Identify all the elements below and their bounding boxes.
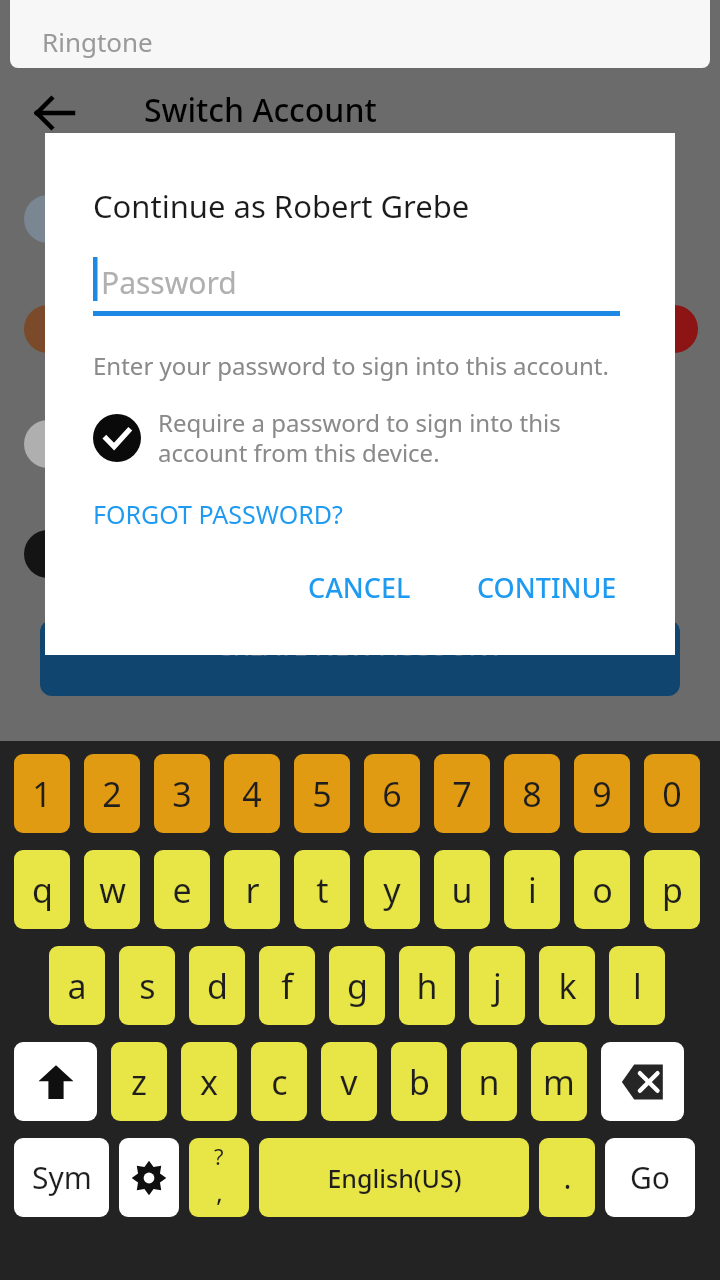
staticText: CREATE NEW ACCOUNT xyxy=(216,628,504,663)
staticText: 5 xyxy=(312,771,332,817)
button[interactable]: n xyxy=(461,1042,517,1121)
button[interactable]: k xyxy=(539,946,595,1025)
button[interactable]: l xyxy=(609,946,665,1025)
button[interactable]: 8 xyxy=(504,754,560,833)
staticText: u xyxy=(451,867,473,913)
button[interactable]: i xyxy=(504,850,560,929)
staticText: r xyxy=(245,867,260,913)
button[interactable]: CONTINUE xyxy=(461,559,633,616)
staticText: l xyxy=(633,963,642,1009)
staticText: h xyxy=(416,963,438,1009)
button[interactable]: CANCEL xyxy=(292,559,427,616)
staticText: y xyxy=(383,867,401,913)
staticText: 1 xyxy=(32,771,52,817)
button[interactable]: f xyxy=(259,946,315,1025)
staticText: ? xyxy=(214,1141,224,1171)
button[interactable]: t xyxy=(294,850,350,929)
staticText: 4 xyxy=(242,771,262,817)
button[interactable]: 7 xyxy=(434,754,490,833)
button[interactable]: e xyxy=(154,850,210,929)
staticText: b xyxy=(409,1059,430,1105)
staticText: Switch Account xyxy=(144,88,377,132)
button[interactable]: u xyxy=(434,850,490,929)
staticText: f xyxy=(281,963,293,1009)
button[interactable]: FORGOT PASSWORD? xyxy=(93,497,343,531)
staticText: c xyxy=(271,1059,288,1105)
button[interactable]: y xyxy=(364,850,420,929)
button[interactable]: 2 xyxy=(84,754,140,833)
staticText: g xyxy=(347,963,368,1009)
button[interactable]: 6 xyxy=(364,754,420,833)
button[interactable]: z xyxy=(111,1042,167,1121)
staticText: Enter your password to sign into this ac… xyxy=(93,349,609,382)
staticText: Go xyxy=(630,1157,670,1198)
staticText: CANCEL xyxy=(308,569,411,606)
staticText: English(US) xyxy=(327,1161,462,1195)
button[interactable]: v xyxy=(321,1042,377,1121)
staticText: m xyxy=(543,1059,575,1105)
button[interactable]: h xyxy=(399,946,455,1025)
button[interactable]: 4 xyxy=(224,754,280,833)
staticText: Password xyxy=(101,262,237,303)
button[interactable]: Require a password to sign into this acc… xyxy=(93,414,635,477)
button[interactable]: q xyxy=(14,850,70,929)
button[interactable]: c xyxy=(251,1042,307,1121)
button[interactable]: d xyxy=(189,946,245,1025)
staticText: t xyxy=(316,867,329,913)
staticText: 0 xyxy=(662,771,682,817)
button[interactable]: CREATE NEW ACCOUNT xyxy=(40,620,680,696)
staticText: CONTINUE xyxy=(477,569,617,606)
button[interactable]: p xyxy=(644,850,700,929)
button[interactable]: Backspace xyxy=(601,1042,684,1121)
staticText: j xyxy=(493,963,502,1009)
button[interactable]: o xyxy=(574,850,630,929)
button[interactable]: a xyxy=(49,946,105,1025)
staticText: Continue as Robert Grebe xyxy=(93,185,470,227)
staticText: i xyxy=(528,867,537,913)
button[interactable]: 0 xyxy=(644,754,700,833)
staticText: e xyxy=(172,867,192,913)
button[interactable]: x xyxy=(181,1042,237,1121)
button[interactable]: m xyxy=(531,1042,587,1121)
button[interactable]: . xyxy=(539,1138,595,1217)
button[interactable]: Shift xyxy=(14,1042,97,1121)
button[interactable]: Ringtone xyxy=(10,0,710,68)
button[interactable]: s xyxy=(119,946,175,1025)
button[interactable]: 9 xyxy=(574,754,630,833)
button[interactable]: b xyxy=(391,1042,447,1121)
button[interactable]: Back xyxy=(22,80,88,146)
staticText: 3 xyxy=(172,771,192,817)
staticText: o xyxy=(592,867,613,913)
staticText: p xyxy=(662,867,683,913)
button[interactable]: Settings xyxy=(119,1138,179,1217)
staticText: k xyxy=(558,963,577,1009)
staticText: n xyxy=(478,1059,500,1105)
staticText: , xyxy=(216,1174,223,1209)
button[interactable]: j xyxy=(469,946,525,1025)
button[interactable]: English(US) xyxy=(259,1138,529,1217)
button[interactable]: g xyxy=(329,946,385,1025)
staticText: 6 xyxy=(382,771,402,817)
staticText: v xyxy=(340,1059,358,1105)
button[interactable]: Password xyxy=(93,254,620,316)
button[interactable]: r xyxy=(224,850,280,929)
button[interactable]: 1 xyxy=(14,754,70,833)
staticText: Ringtone xyxy=(42,24,153,59)
staticText: s xyxy=(139,963,156,1009)
staticText: Require a password to sign into this acc… xyxy=(158,406,635,469)
staticText: 2 xyxy=(102,771,122,817)
button[interactable]: Sym xyxy=(14,1138,109,1217)
staticText: 8 xyxy=(522,771,542,817)
staticText: 9 xyxy=(592,771,612,817)
staticText: z xyxy=(131,1059,147,1105)
button[interactable]: 3 xyxy=(154,754,210,833)
button[interactable]: ? xyxy=(189,1138,249,1217)
staticText: w xyxy=(99,867,126,913)
button[interactable]: Go xyxy=(605,1138,695,1217)
staticText: q xyxy=(32,867,53,913)
staticText: 7 xyxy=(452,771,472,817)
staticText: Sym xyxy=(32,1157,92,1198)
staticText: FORGOT PASSWORD? xyxy=(93,497,343,531)
button[interactable]: 5 xyxy=(294,754,350,833)
button[interactable]: w xyxy=(84,850,140,929)
